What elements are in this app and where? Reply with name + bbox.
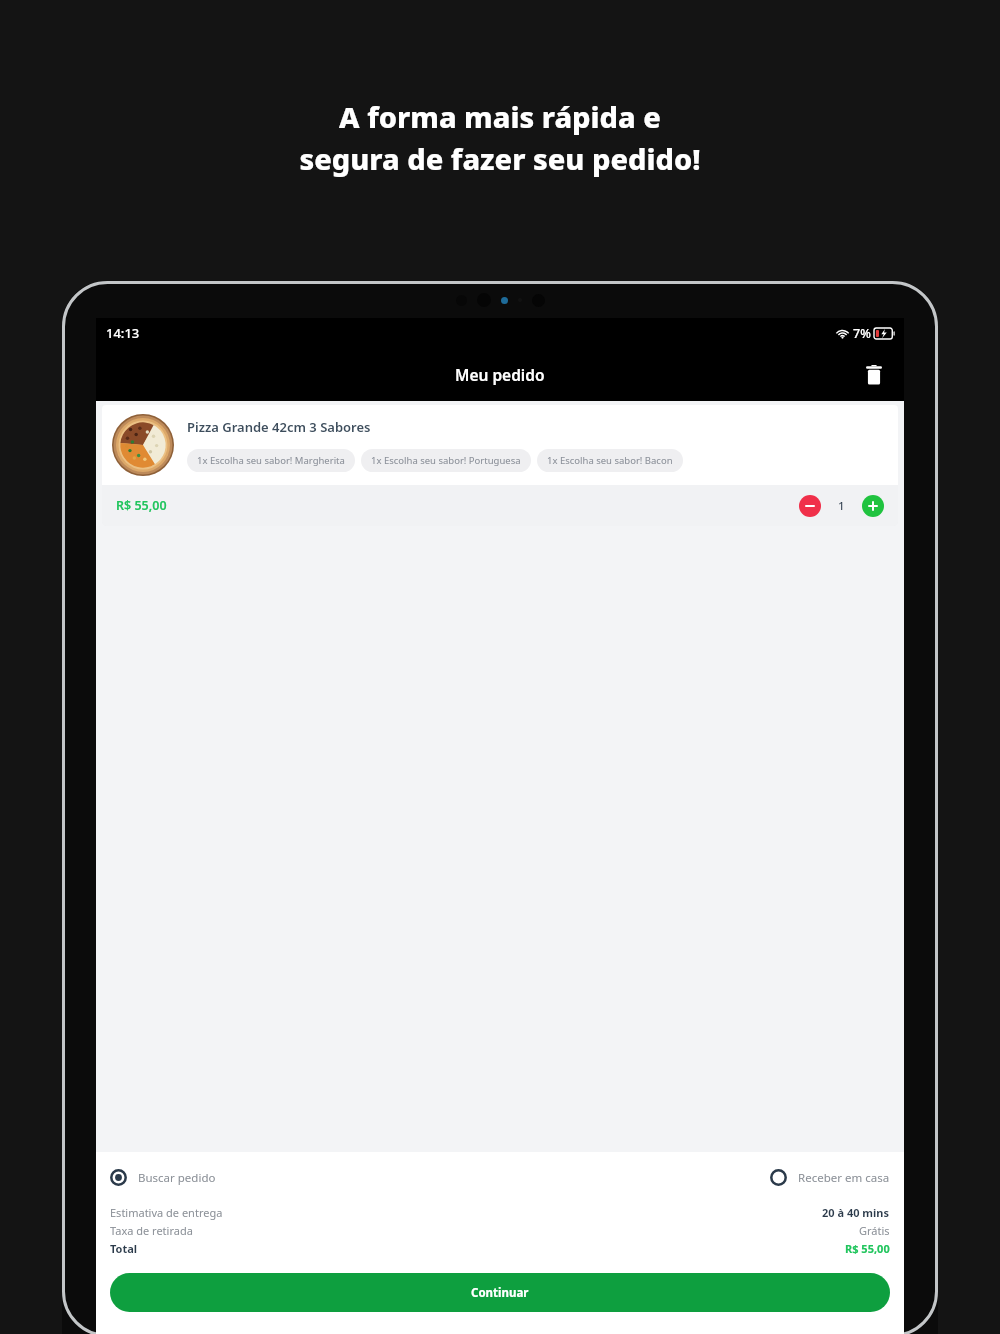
staticText: segura de fazer seu pedido! bbox=[0, 139, 1000, 178]
button[interactable]: 1x Escolha seu sabor! Bacon bbox=[537, 449, 683, 472]
button[interactable]: Receber em casa bbox=[770, 1169, 890, 1186]
staticText: 1x Escolha seu sabor! Bacon bbox=[547, 454, 673, 467]
button[interactable]: 1x Escolha seu sabor! Margherita bbox=[187, 449, 355, 472]
button[interactable]: Buscar pedido bbox=[110, 1169, 216, 1186]
staticText: 14:13 bbox=[106, 324, 140, 342]
button[interactable]: Continuar bbox=[110, 1273, 890, 1312]
button[interactable]: 1x Escolha seu sabor! Portuguesa bbox=[361, 449, 531, 472]
button[interactable]: Diminuir quantidade bbox=[799, 495, 821, 517]
button[interactable]: Excluir pedido bbox=[858, 359, 890, 391]
staticText: R$ 55,00 bbox=[116, 497, 167, 514]
staticText: Buscar pedido bbox=[138, 1170, 216, 1186]
staticText: 7% bbox=[853, 325, 871, 342]
staticText: Continuar bbox=[471, 1285, 529, 1301]
staticText: 20 à 40 mins bbox=[822, 1205, 890, 1220]
staticText: 1 bbox=[838, 498, 845, 514]
staticText: Total bbox=[110, 1241, 138, 1256]
staticText: Taxa de retirada bbox=[110, 1223, 193, 1238]
staticText: Grátis bbox=[859, 1223, 890, 1238]
staticText: A forma mais rápida e bbox=[0, 97, 1000, 136]
staticText: 1x Escolha seu sabor! Portuguesa bbox=[371, 454, 521, 467]
staticText: Receber em casa bbox=[798, 1170, 890, 1186]
staticText: 1x Escolha seu sabor! Margherita bbox=[197, 454, 345, 467]
staticText: Pizza Grande 42cm 3 Sabores bbox=[187, 418, 371, 436]
button[interactable]: Aumentar quantidade bbox=[862, 495, 884, 517]
button[interactable]: Pizza Grande 42cm 3 Sabores bbox=[102, 405, 898, 526]
staticText: Meu pedido bbox=[455, 364, 545, 385]
staticText: Estimativa de entrega bbox=[110, 1205, 223, 1220]
staticText: R$ 55,00 bbox=[845, 1241, 890, 1256]
